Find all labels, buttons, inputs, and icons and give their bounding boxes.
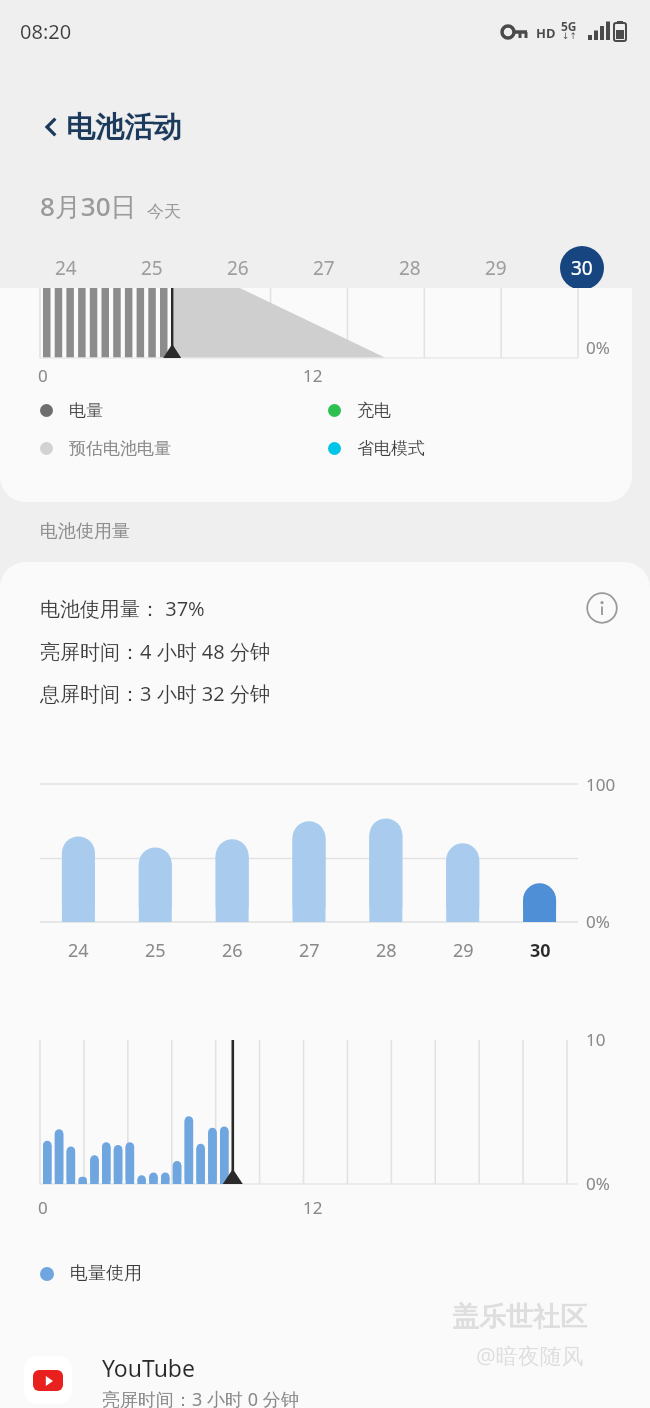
staticText: 100 — [586, 773, 616, 796]
staticText: 12 — [303, 1196, 323, 1219]
button[interactable]: 30 — [554, 240, 610, 296]
button[interactable]: 28 — [382, 240, 438, 296]
staticText: 今天 — [147, 201, 181, 222]
staticText: 0 — [38, 1196, 48, 1219]
staticText: 10 — [586, 1028, 606, 1051]
staticText: 28 — [376, 938, 397, 963]
staticText: 29 — [485, 255, 507, 281]
staticText: HD — [536, 24, 556, 42]
staticText: 8月30日 — [40, 188, 137, 224]
staticText: ↓↑ — [562, 31, 578, 41]
staticText: 26 — [227, 255, 249, 281]
staticText: 0% — [586, 910, 610, 933]
staticText: 12 — [303, 364, 323, 387]
staticText: 息屏时间：3 小时 32 分钟 — [40, 680, 270, 707]
staticText: @暗夜随风 — [476, 1340, 584, 1370]
staticText: 0% — [586, 1172, 610, 1195]
staticText: 电池使用量： 37% — [40, 595, 205, 622]
staticText: 电量使用 — [70, 1262, 142, 1285]
staticText: 25 — [141, 255, 163, 281]
button[interactable]: 25 — [124, 240, 180, 296]
staticText: 27 — [299, 938, 320, 963]
staticText: 电池活动 — [66, 109, 182, 146]
staticText: 亮屏时间：4 小时 48 分钟 — [40, 638, 270, 665]
staticText: 充电 — [357, 400, 391, 421]
staticText: 0 — [38, 364, 48, 387]
staticText: 预估电池电量 — [69, 438, 171, 459]
button[interactable]: Back — [28, 103, 76, 151]
staticText: 亮屏时间：3 小时 0 分钟 — [102, 1387, 299, 1408]
button[interactable]: 27 — [296, 240, 352, 296]
staticText: 24 — [68, 938, 89, 963]
button[interactable]: 26 — [210, 240, 266, 296]
staticText: 30 — [530, 938, 551, 963]
staticText: 盖乐世社区 — [452, 1300, 587, 1334]
staticText: 29 — [453, 938, 474, 963]
button[interactable]: 29 — [468, 240, 524, 296]
staticText: 电池使用量 — [40, 520, 130, 543]
staticText: 电量 — [69, 400, 103, 421]
staticText: 24 — [55, 255, 77, 281]
staticText: 5G — [561, 18, 577, 34]
staticText: 27 — [313, 255, 335, 281]
staticText: YouTube — [102, 1352, 195, 1383]
button[interactable]: 24 — [38, 240, 94, 296]
staticText: 26 — [222, 938, 243, 963]
staticText: 30 — [571, 255, 593, 281]
button[interactable]: Info — [578, 584, 626, 632]
staticText: 0% — [586, 336, 610, 359]
staticText: 25 — [145, 938, 166, 963]
staticText: 省电模式 — [357, 438, 425, 459]
staticText: 28 — [399, 255, 421, 281]
button[interactable]: YouTube — [0, 1352, 650, 1408]
staticText: 08:20 — [20, 18, 72, 45]
